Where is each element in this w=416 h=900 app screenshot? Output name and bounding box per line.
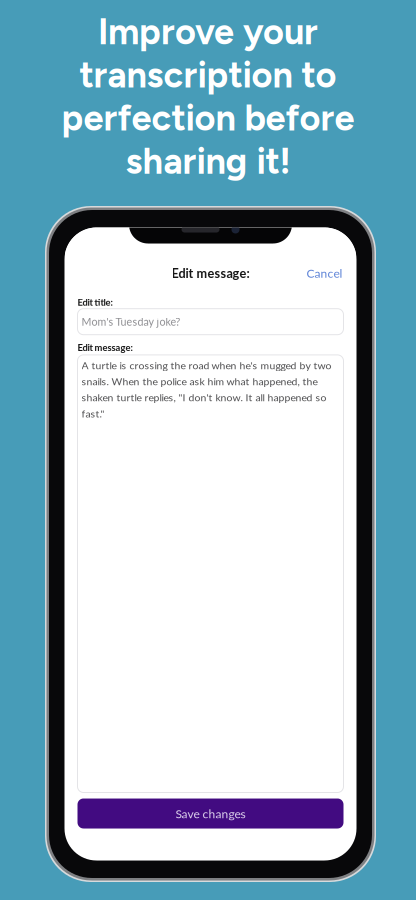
staticText: transcription to: [79, 53, 336, 96]
staticText: Save changes: [175, 806, 245, 821]
button[interactable]: Cancel: [302, 260, 346, 286]
staticText: Mom's Tuesday joke?: [81, 315, 180, 328]
staticText: Edit title:: [77, 296, 112, 308]
staticText: Cancel: [306, 266, 342, 280]
staticText: Improve your: [98, 10, 318, 53]
staticText: perfection before: [61, 96, 354, 140]
staticText: sharing it!: [125, 140, 290, 183]
staticText: Edit message:: [77, 342, 132, 353]
button[interactable]: Save changes: [77, 798, 343, 828]
staticText: A turtle is crossing the road when he's …: [81, 359, 331, 420]
staticText: Edit message:: [171, 265, 249, 281]
